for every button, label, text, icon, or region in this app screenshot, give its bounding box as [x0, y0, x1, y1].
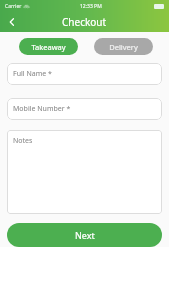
button[interactable]: Notes: [7, 130, 162, 214]
staticText: Full Name *: [13, 69, 52, 79]
staticText: Delivery: [109, 42, 138, 52]
button[interactable]: Back: [4, 14, 20, 30]
button[interactable]: Delivery: [94, 38, 153, 55]
button[interactable]: Next: [7, 223, 162, 247]
button[interactable]: Takeaway: [19, 38, 78, 55]
staticText: Mobile Number *: [13, 104, 71, 114]
staticText: 12:33 PM: [80, 3, 102, 10]
staticText: Checkout: [62, 15, 107, 29]
staticText: Next: [75, 229, 95, 241]
button[interactable]: Mobile Number *: [7, 98, 162, 120]
staticText: Takeaway: [31, 42, 66, 52]
staticText: Carrier: [5, 3, 22, 10]
staticText: Notes: [13, 136, 33, 146]
button[interactable]: Full Name *: [7, 63, 162, 85]
